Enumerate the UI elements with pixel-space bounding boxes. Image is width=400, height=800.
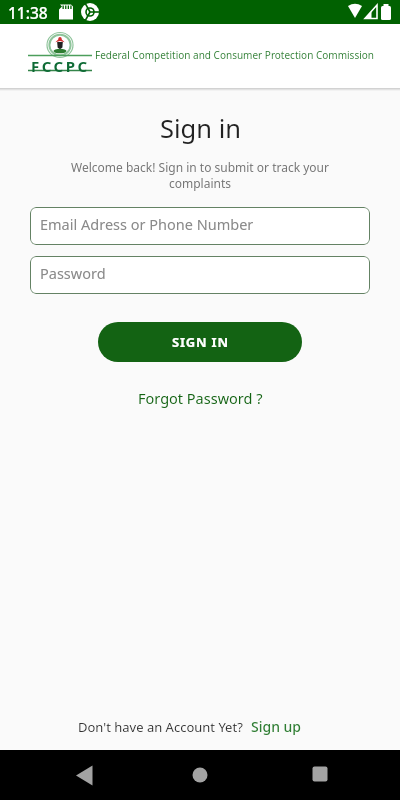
- staticText: 11:38: [8, 2, 48, 23]
- button[interactable]: [134, 750, 267, 800]
- staticText: Federal Competition and Consumer Protect…: [95, 48, 374, 62]
- staticText: Don't have an Account Yet?: [78, 718, 243, 736]
- button[interactable]: [267, 750, 400, 800]
- button[interactable]: Email Adress or Phone Number: [30, 207, 370, 245]
- button[interactable]: SIGN IN: [98, 322, 302, 362]
- staticText: Sign up: [251, 717, 302, 736]
- staticText: Forgot Password ?: [138, 388, 263, 408]
- button[interactable]: [0, 750, 134, 800]
- button[interactable]: Password: [30, 256, 370, 294]
- staticText: Welcome back! Sign in to submit or track…: [71, 159, 329, 191]
- staticText: SIGN IN: [172, 333, 229, 351]
- staticText: FCCPC: [31, 56, 90, 76]
- staticText: Sign in: [160, 111, 241, 146]
- staticText: Email Adress or Phone Number: [40, 214, 254, 234]
- button[interactable]: Sign up: [251, 717, 302, 736]
- staticText: Password: [40, 263, 106, 283]
- button[interactable]: Forgot Password ?: [138, 388, 263, 408]
